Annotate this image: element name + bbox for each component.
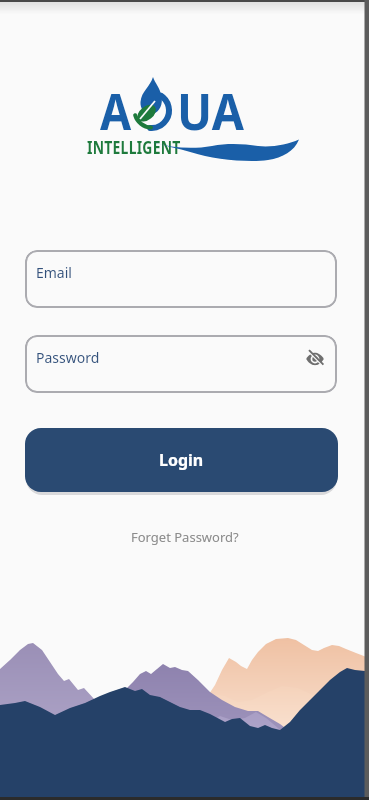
staticText: Forget Password?: [131, 528, 239, 546]
button[interactable]: Password: [25, 335, 337, 393]
staticText: UA: [177, 77, 244, 145]
button[interactable]: Forget Password?: [0, 524, 369, 550]
staticText: INTELLIGENT: [87, 136, 181, 159]
button[interactable]: Login: [25, 428, 338, 492]
button[interactable]: Email: [25, 250, 337, 308]
staticText: Login: [159, 449, 204, 471]
staticText: Password: [36, 348, 100, 367]
staticText: A: [100, 77, 131, 145]
staticText: Email: [36, 263, 72, 282]
